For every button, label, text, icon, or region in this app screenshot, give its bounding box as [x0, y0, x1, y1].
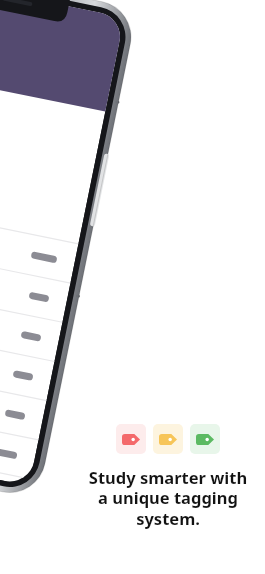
- button[interactable]: Red tag: [116, 424, 146, 454]
- staticText: Study smarter with a unique tagging syst…: [78, 466, 258, 530]
- button[interactable]: Amber tag: [153, 424, 183, 454]
- button[interactable]: Green tag: [190, 424, 220, 454]
